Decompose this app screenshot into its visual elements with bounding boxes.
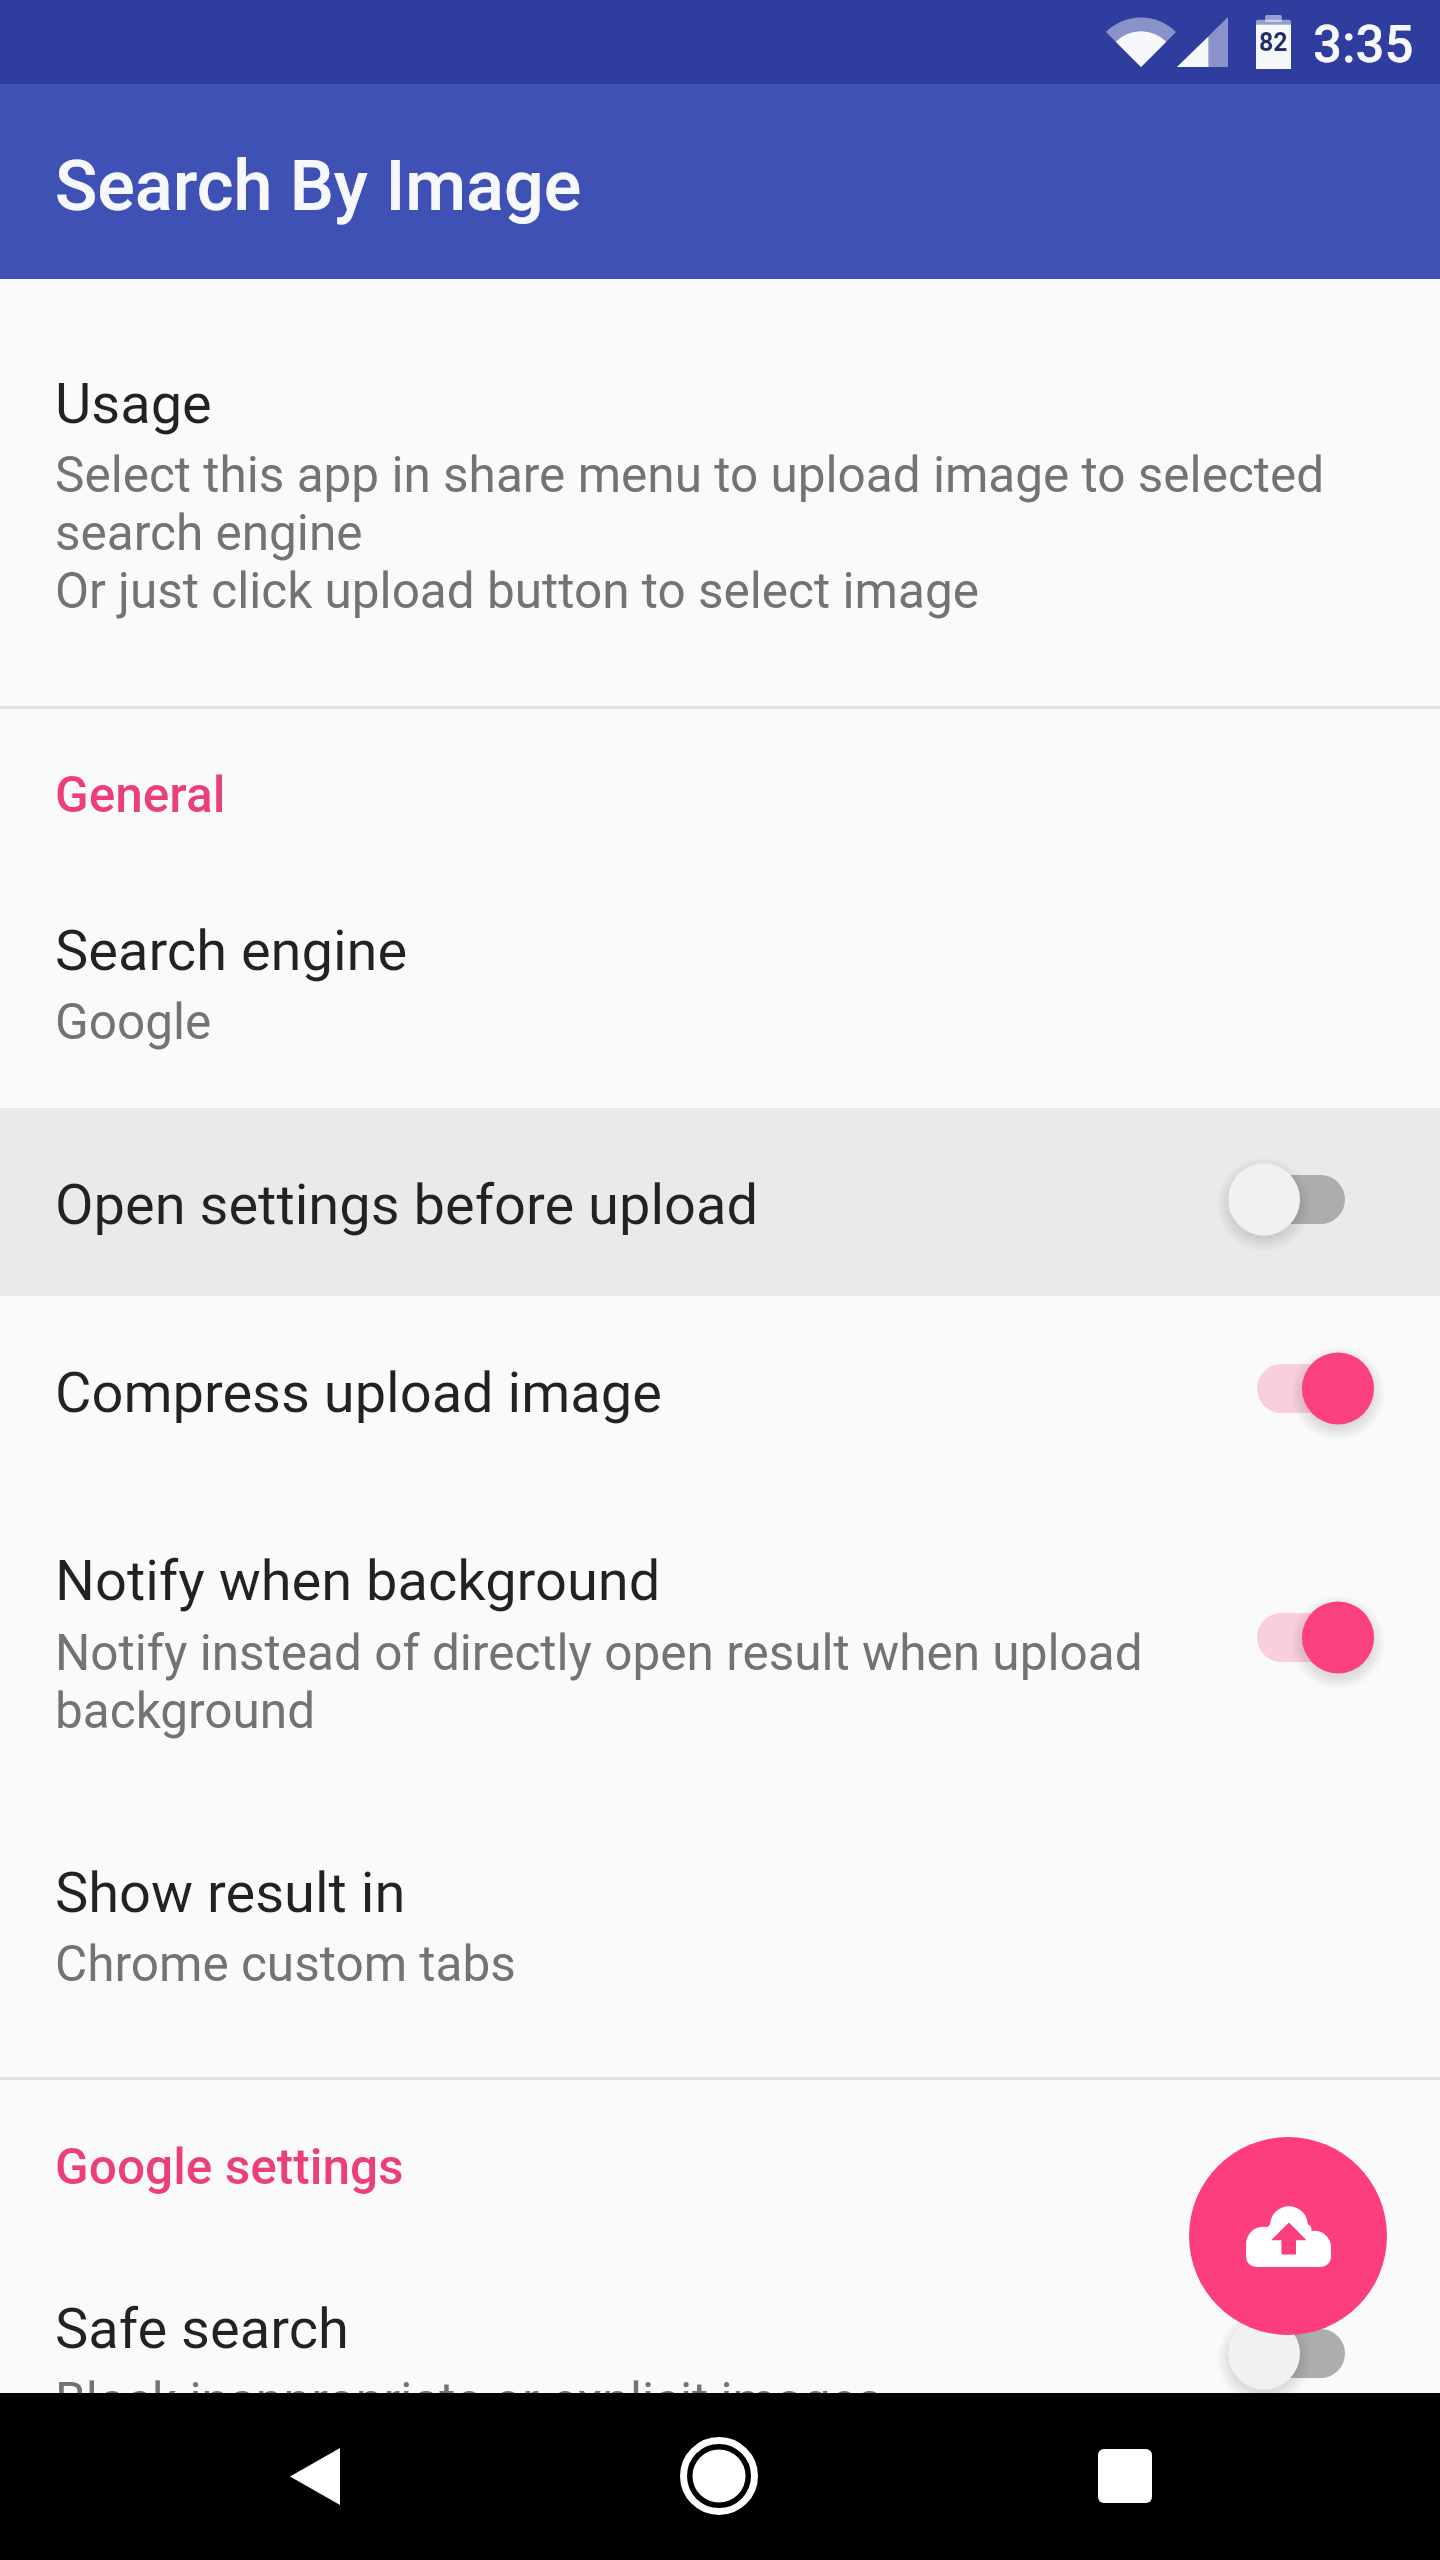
staticText: Notify instead of directly open result w… xyxy=(55,1624,1185,1740)
staticText: Show result in xyxy=(55,1860,406,1926)
staticText: 82 xyxy=(1259,28,1288,57)
button[interactable]: Toggle off xyxy=(1214,1161,1359,1238)
staticText: Compress upload image xyxy=(55,1360,662,1426)
button[interactable]: Toggle on xyxy=(1243,1350,1388,1427)
button[interactable]: Back xyxy=(252,2413,378,2539)
staticText: Safe search xyxy=(55,2296,349,2362)
staticText: Chrome custom tabs xyxy=(55,1935,516,1993)
button[interactable]: Notify when background xyxy=(0,1500,1440,1800)
button[interactable]: Open settings before upload xyxy=(0,1108,1440,1296)
staticText: Search By Image xyxy=(55,145,582,227)
button[interactable]: Home xyxy=(656,2413,782,2539)
staticText: Notify when background xyxy=(55,1548,661,1614)
button[interactable]: Search engine xyxy=(0,878,1440,1108)
button[interactable]: Recent apps xyxy=(1062,2413,1188,2539)
staticText: Usage xyxy=(55,371,212,437)
staticText: Google xyxy=(55,993,212,1051)
button[interactable]: Show result in xyxy=(0,1820,1440,2050)
staticText: Google settings xyxy=(55,2138,404,2196)
staticText: Select this app in share menu to upload … xyxy=(55,446,1345,620)
button[interactable]: Toggle off xyxy=(1214,2315,1359,2392)
button[interactable]: Toggle on xyxy=(1243,1599,1388,1676)
button[interactable]: Safe search xyxy=(0,2254,1440,2393)
staticText: Open settings before upload xyxy=(55,1172,759,1238)
staticText: Search engine xyxy=(55,918,408,984)
button[interactable]: Compress upload image xyxy=(0,1296,1440,1486)
staticText: 3:35 xyxy=(1313,15,1414,75)
staticText: Block inappropriate or explicit images xyxy=(55,2372,883,2430)
button[interactable]: Upload image xyxy=(1189,2137,1387,2335)
button[interactable]: Usage xyxy=(0,300,1440,695)
staticText: General xyxy=(55,766,226,824)
